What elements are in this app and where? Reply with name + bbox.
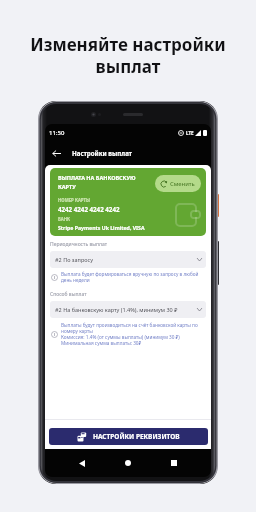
staticText: 4242 4242 4242 4242	[58, 205, 120, 213]
staticText: ВЫПЛАТА НА БАНКОВСКУЮ КАРТУ	[58, 174, 136, 191]
staticText: #2 По запросу	[55, 256, 197, 263]
button[interactable]: Back	[48, 145, 64, 161]
staticText: Периодичность выплат	[50, 241, 108, 248]
staticText: Настройки выплат	[72, 149, 132, 157]
button[interactable]: Сменить	[50, 168, 206, 236]
staticText: НОМЕР КАРТЫ	[58, 197, 90, 203]
button[interactable]: #2 По запросу	[50, 251, 206, 268]
staticText: Stripe Payments Uk Limited, VISA	[58, 224, 145, 231]
button[interactable]: Home	[119, 454, 137, 472]
staticText: Выплата будет формироваться вручную по з…	[61, 271, 199, 283]
staticText: Изменяйте настройки выплат	[14, 33, 242, 78]
staticText: БАНК	[58, 216, 71, 222]
staticText: LTE	[186, 130, 194, 136]
staticText: НАСТРОЙКИ РЕКВИЗИТОВ	[93, 432, 180, 441]
button[interactable]: Сменить	[155, 175, 201, 192]
staticText: Способ выплат	[50, 291, 87, 298]
staticText: #2 На банковскую карту (1.4%), минимум 3…	[55, 306, 197, 313]
staticText: Выплаты будут производиться на счёт банк…	[61, 322, 198, 346]
button[interactable]: Recents	[165, 454, 183, 472]
button[interactable]: #2 На банковскую карту (1.4%), минимум 3…	[50, 301, 206, 318]
staticText: 11:50	[49, 129, 65, 137]
staticText: Сменить	[170, 180, 195, 188]
button[interactable]: НАСТРОЙКИ РЕКВИЗИТОВ	[49, 428, 208, 445]
button[interactable]: Back	[73, 454, 91, 472]
